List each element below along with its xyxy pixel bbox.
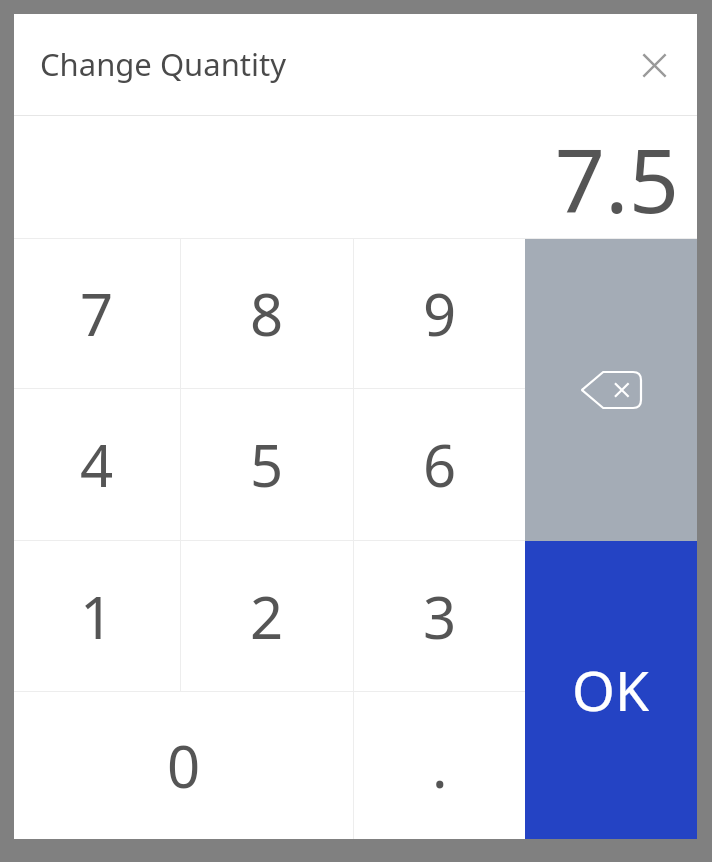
button[interactable]: 4	[14, 389, 180, 540]
button[interactable]: 6	[354, 389, 525, 540]
button[interactable]: 3	[354, 541, 525, 691]
button[interactable]: 1	[14, 541, 180, 691]
staticText: 0	[167, 726, 201, 805]
button[interactable]: .	[354, 692, 525, 839]
staticText: 7.5	[554, 119, 679, 239]
button[interactable]: 2	[181, 541, 353, 691]
staticText: 8	[250, 274, 284, 353]
staticText: 1	[80, 577, 114, 656]
button[interactable]: Backspace	[525, 238, 697, 541]
staticText: Change Quantity	[40, 43, 287, 85]
staticText: .	[432, 726, 448, 805]
button[interactable]: 5	[181, 389, 353, 540]
button[interactable]: 7	[14, 238, 180, 388]
staticText: 9	[423, 274, 457, 353]
button[interactable]: 8	[181, 238, 353, 388]
staticText: 2	[250, 577, 284, 656]
staticText: 5	[250, 425, 284, 504]
staticText: 7	[80, 274, 114, 353]
staticText: OK	[572, 652, 650, 727]
button[interactable]: 9	[354, 238, 525, 388]
staticText: 6	[423, 425, 457, 504]
staticText: 3	[423, 577, 457, 656]
button[interactable]: 0	[14, 692, 353, 839]
staticText: 4	[80, 425, 114, 504]
button[interactable]: OK	[525, 541, 697, 839]
button[interactable]: Close	[632, 43, 676, 87]
